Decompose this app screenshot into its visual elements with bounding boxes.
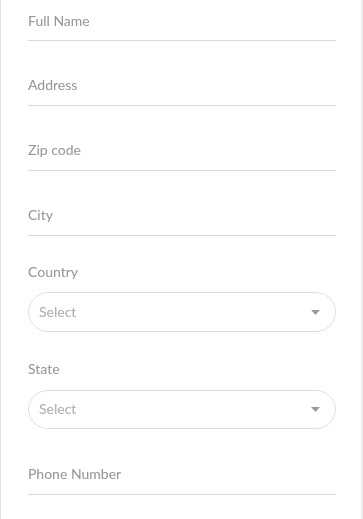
staticText: Select (39, 303, 77, 320)
staticText: Select (39, 400, 77, 417)
button[interactable]: Select (28, 292, 336, 332)
button[interactable]: City (28, 206, 336, 236)
staticText: State (28, 360, 60, 377)
other: Open Country list (311, 310, 320, 315)
button[interactable]: Address (28, 76, 336, 106)
staticText: Address (28, 76, 78, 93)
staticText: Full Name (28, 12, 90, 29)
staticText: City (28, 206, 53, 223)
staticText: Phone Number (28, 465, 122, 482)
staticText: Country (28, 263, 79, 280)
button[interactable]: Phone Number (28, 465, 336, 495)
button[interactable]: Select (28, 390, 336, 429)
other: Open State list (311, 407, 320, 412)
button[interactable]: Zip code (28, 141, 336, 171)
staticText: Zip code (28, 141, 81, 158)
button[interactable]: Full Name (28, 12, 336, 41)
